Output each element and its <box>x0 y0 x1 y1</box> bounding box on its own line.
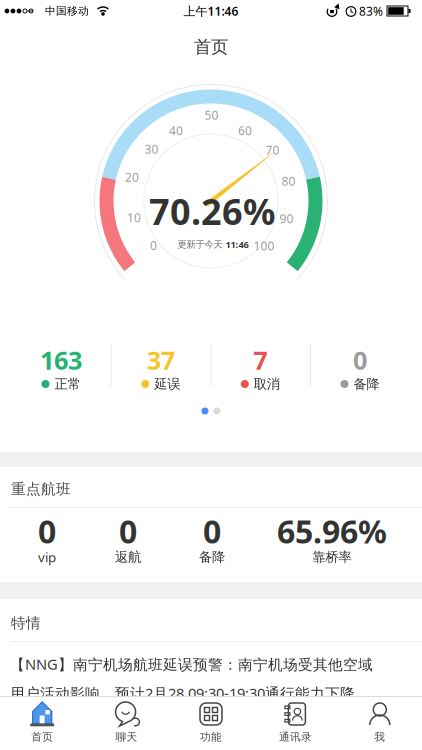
staticText: 70.26% <box>149 187 275 235</box>
staticText: 备降 <box>199 549 225 565</box>
staticText: 163 <box>40 343 82 377</box>
staticText: 首页 <box>31 730 53 743</box>
staticText: 我 <box>374 730 385 743</box>
staticText: 0 <box>353 343 367 377</box>
button[interactable]: 功能 <box>169 698 253 750</box>
staticText: 靠桥率 <box>312 549 351 565</box>
staticText: 用户活动影响，预计2月28 09:30-19:30通行能力下降 <box>10 683 355 703</box>
staticText: 70 <box>265 142 279 158</box>
staticText: 【NNG】南宁机场航班延误预警：南宁机场受其他空域 <box>10 654 373 674</box>
staticText: 中国移动 <box>45 4 89 17</box>
staticText: 上午11:46 <box>183 3 238 19</box>
staticText: 取消 <box>254 376 280 392</box>
button[interactable]: 聊天 <box>85 698 169 750</box>
staticText: 备降 <box>353 376 379 392</box>
staticText: 65.96% <box>277 510 387 552</box>
staticText: 延误 <box>154 376 180 392</box>
staticText: 0 <box>119 510 137 552</box>
staticText: 正常 <box>54 376 80 392</box>
staticText: 10 <box>127 209 141 225</box>
staticText: 返航 <box>115 549 141 565</box>
staticText: 首页 <box>194 36 228 58</box>
staticText: 100 <box>253 238 274 254</box>
staticText: 50 <box>204 107 218 123</box>
staticText: 37 <box>147 343 175 377</box>
staticText: 90 <box>279 210 293 226</box>
staticText: vip <box>38 548 56 566</box>
staticText: 功能 <box>200 730 222 743</box>
staticText: 20 <box>125 169 139 185</box>
staticText: 40 <box>169 122 183 138</box>
staticText: 30 <box>144 141 158 157</box>
staticText: 83% <box>359 3 383 19</box>
staticText: 重点航班 <box>11 480 71 498</box>
staticText: 11:46 <box>225 238 248 251</box>
staticText: 60 <box>238 122 252 138</box>
staticText: 特情 <box>11 614 41 632</box>
button[interactable]: 我 <box>338 698 422 750</box>
button[interactable]: 首页 <box>0 698 84 750</box>
staticText: 7 <box>253 343 267 377</box>
staticText: 聊天 <box>116 730 138 743</box>
staticText: 80 <box>281 173 295 189</box>
staticText: 通讯录 <box>279 730 312 743</box>
staticText: 更新于今天 <box>177 239 222 250</box>
staticText: 0 <box>150 237 157 253</box>
staticText: 0 <box>203 510 221 552</box>
staticText: 0 <box>38 510 56 552</box>
button[interactable]: 通讯录 <box>253 698 337 750</box>
